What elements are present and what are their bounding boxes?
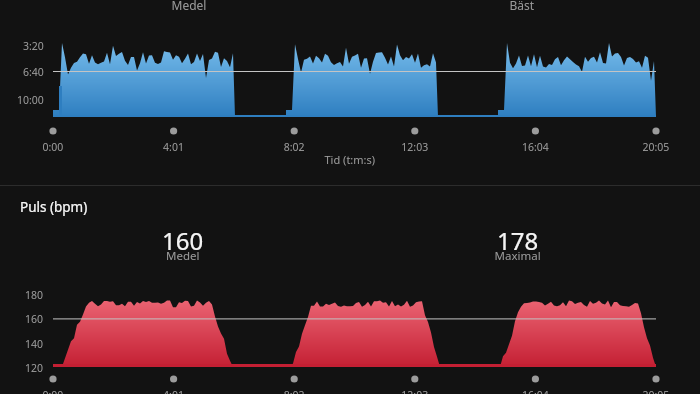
button[interactable]: Workout pace and pulse charts [0,0,700,394]
